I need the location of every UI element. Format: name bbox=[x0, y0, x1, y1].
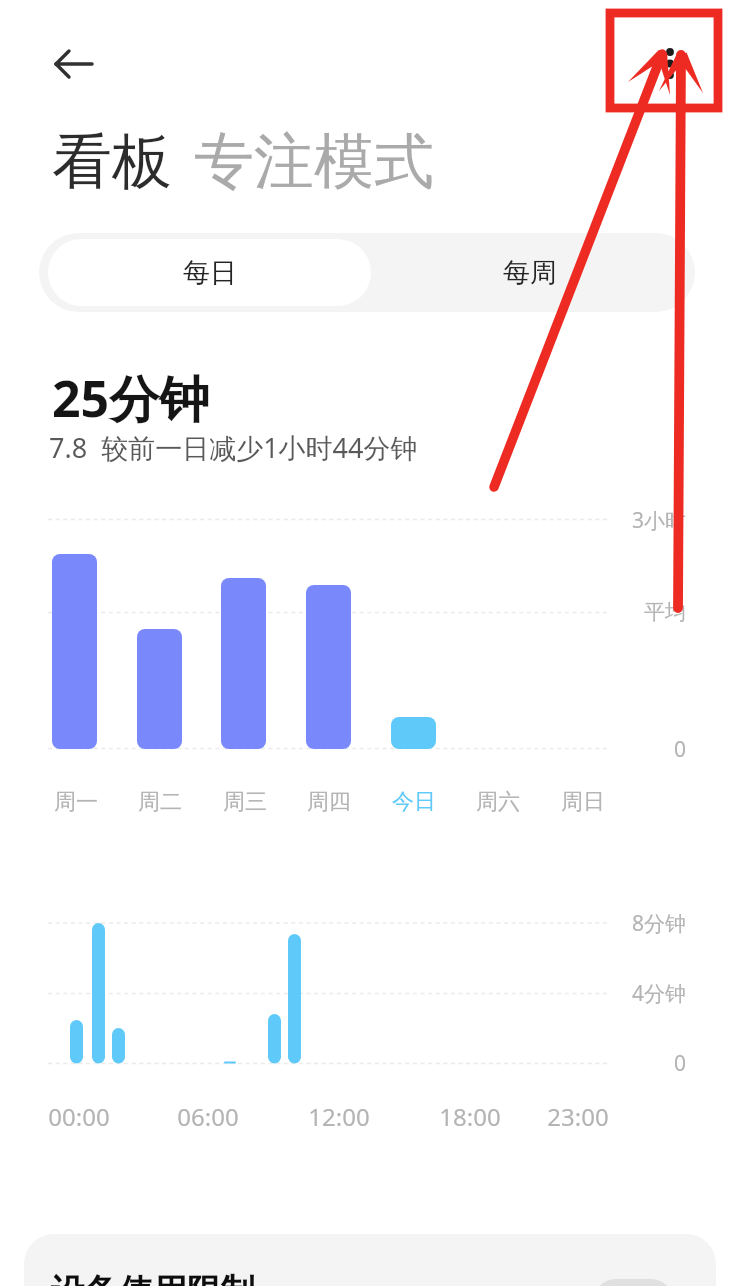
staticText: 每日 bbox=[183, 256, 237, 290]
staticText: 每周 bbox=[503, 256, 557, 290]
staticText: 周三 bbox=[223, 788, 267, 816]
staticText: 周日 bbox=[561, 788, 605, 816]
button[interactable]: 专注模式 bbox=[194, 124, 434, 200]
staticText: 周一 bbox=[54, 788, 98, 816]
button[interactable]: More options bbox=[630, 22, 710, 102]
staticText: 专注模式 bbox=[194, 124, 434, 200]
staticText: 0 bbox=[673, 1049, 686, 1078]
staticText: 8分钟 bbox=[631, 909, 686, 938]
staticText: 7.8 较前一日减少1小时44分钟 bbox=[49, 429, 418, 466]
staticText: 18:00 bbox=[439, 1100, 501, 1130]
button[interactable]: 设备使用限制 bbox=[24, 1234, 716, 1286]
staticText: 周四 bbox=[307, 788, 351, 816]
staticText: 今日 bbox=[392, 788, 436, 816]
staticText: 06:00 bbox=[177, 1100, 239, 1130]
staticText: 0 bbox=[673, 735, 686, 764]
staticText: 25分钟 bbox=[52, 364, 210, 432]
staticText: 设备使用限制 bbox=[51, 1270, 255, 1286]
staticText: 平均 bbox=[644, 599, 686, 625]
button[interactable]: 每周 bbox=[371, 239, 688, 306]
button[interactable]: 看板 bbox=[52, 124, 172, 200]
staticText: 周六 bbox=[476, 788, 520, 816]
staticText: 3小时 bbox=[631, 506, 686, 535]
button[interactable]: 每日 bbox=[48, 239, 371, 306]
button[interactable]: Back bbox=[38, 28, 110, 100]
staticText: 00:00 bbox=[48, 1100, 110, 1130]
staticText: 看板 bbox=[52, 124, 172, 200]
staticText: 23:00 bbox=[547, 1100, 609, 1130]
staticText: 4分钟 bbox=[631, 979, 686, 1008]
staticText: 12:00 bbox=[308, 1100, 370, 1130]
staticText: 周二 bbox=[138, 788, 182, 816]
